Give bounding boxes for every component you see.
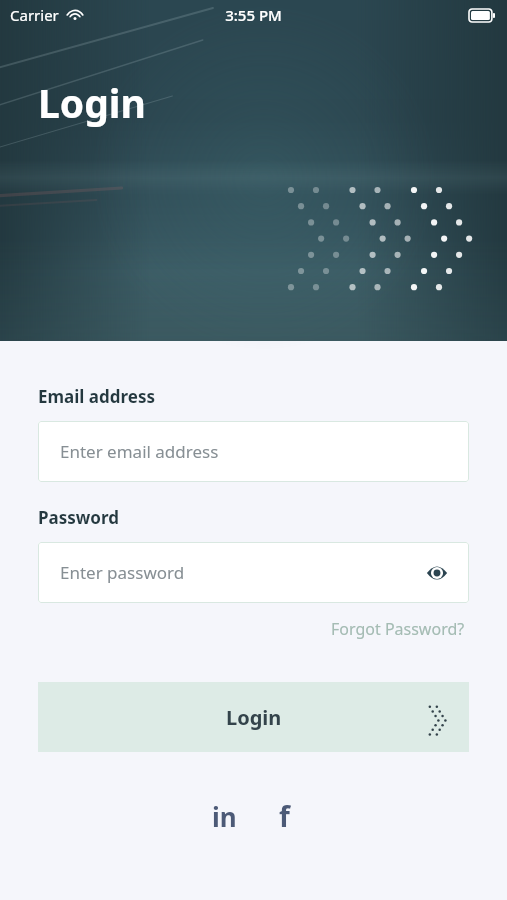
staticText: Password <box>38 506 119 529</box>
button[interactable]: Enter email address <box>38 421 469 482</box>
button[interactable]: Show password <box>419 555 455 591</box>
staticText: f <box>279 797 290 835</box>
button[interactable]: Forgot Password? <box>327 614 469 644</box>
staticText: Forgot Password? <box>331 618 465 640</box>
button[interactable]: Enter password <box>38 542 469 603</box>
staticText: 3:55 PM <box>225 5 282 25</box>
staticText: Login <box>38 76 146 129</box>
staticText: Enter email address <box>60 440 219 463</box>
staticText: Enter password <box>60 561 185 584</box>
button[interactable]: Facebook <box>262 794 306 838</box>
button[interactable]: Login <box>38 682 469 752</box>
staticText: Email address <box>38 385 155 408</box>
staticText: Carrier <box>10 5 59 25</box>
button[interactable]: LinkedIn <box>202 794 246 838</box>
staticText: Login <box>226 704 282 731</box>
staticText: in <box>212 799 237 834</box>
